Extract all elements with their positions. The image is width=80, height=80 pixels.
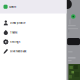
button[interactable]: Theme	[0, 28, 66, 37]
staticText: Settings	[10, 40, 20, 43]
button[interactable]: Qasim	[0, 0, 66, 13]
staticText: Theme	[10, 31, 17, 34]
button[interactable]: View profile	[0, 18, 66, 28]
staticText: Qasim	[9, 5, 16, 8]
staticText: View profile	[10, 22, 25, 25]
button[interactable]: Settings	[0, 37, 66, 47]
staticText: Give feedback	[10, 50, 26, 53]
button[interactable]: Give feedback	[0, 47, 66, 56]
